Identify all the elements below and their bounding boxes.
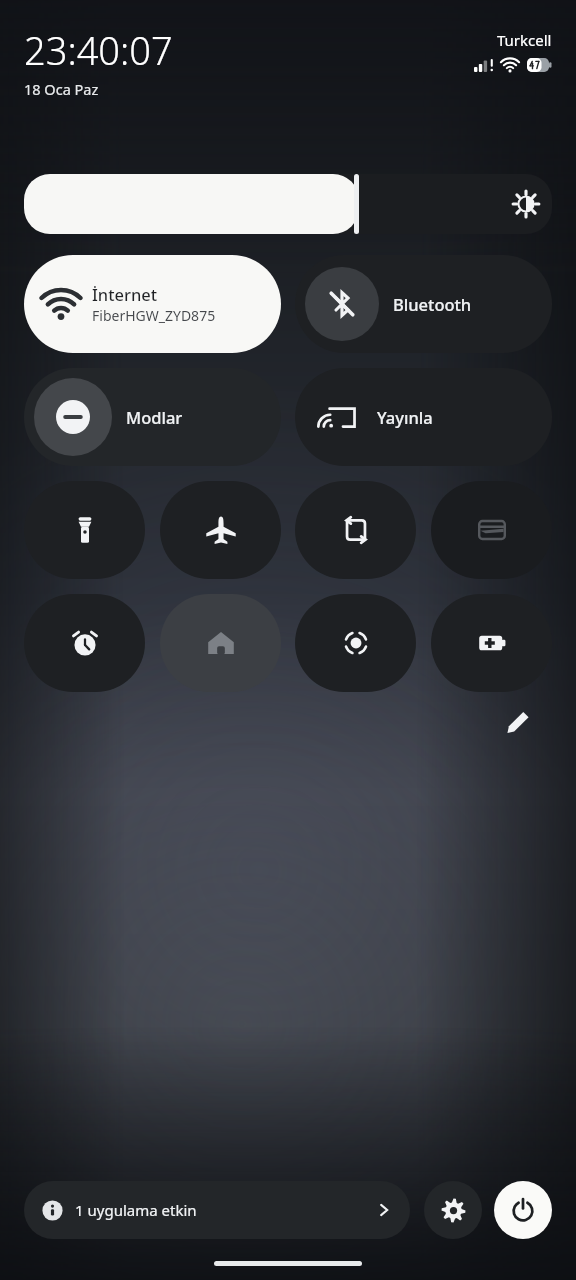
button[interactable]: Settings bbox=[424, 1181, 482, 1239]
staticText: 1 uygulama etkin bbox=[75, 1200, 197, 1220]
staticText: Yayınla bbox=[377, 406, 433, 428]
staticText: İnternet bbox=[92, 283, 158, 305]
staticText: Modlar bbox=[126, 406, 183, 428]
button[interactable]: Alarm bbox=[24, 594, 145, 692]
staticText: 23:40:07 bbox=[24, 24, 173, 76]
staticText: Bluetooth bbox=[393, 293, 472, 315]
button[interactable]: 1 uygulama etkin bbox=[24, 1181, 410, 1239]
button[interactable]: Nearby Share bbox=[295, 594, 416, 692]
button[interactable]: İnternet bbox=[24, 255, 281, 353]
staticText: 18 Oca Paz bbox=[24, 79, 99, 99]
staticText: FiberHGW_ZYD875 bbox=[92, 306, 216, 325]
staticText: Turkcell bbox=[497, 30, 552, 50]
button[interactable]: Edit tiles bbox=[498, 702, 538, 742]
button[interactable]: Brightness bbox=[24, 174, 552, 234]
button[interactable]: Yayınla bbox=[295, 368, 552, 466]
button[interactable]: Auto rotate bbox=[295, 481, 416, 579]
button[interactable]: Battery saver bbox=[431, 594, 552, 692]
button[interactable]: Home bbox=[160, 594, 281, 692]
button[interactable]: Flashlight bbox=[24, 481, 145, 579]
button[interactable]: Power bbox=[494, 1181, 552, 1239]
button[interactable]: Bluetooth bbox=[295, 255, 552, 353]
button[interactable]: Airplane mode bbox=[160, 481, 281, 579]
button[interactable]: Wallet bbox=[431, 481, 552, 579]
button[interactable]: Modlar bbox=[24, 368, 281, 466]
